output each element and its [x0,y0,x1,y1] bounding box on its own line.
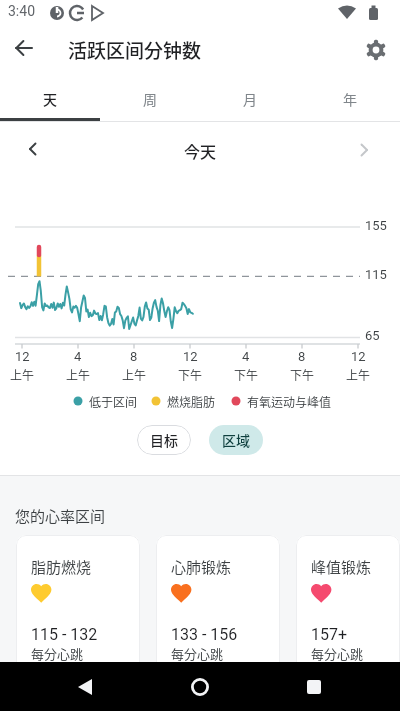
staticText: 天 [43,89,57,109]
staticText: 您的心率区间 [15,505,106,527]
button[interactable] [290,663,338,711]
staticText: 上午 [346,366,371,383]
staticText: 年 [343,89,357,109]
staticText: 峰值锻炼 [311,556,372,578]
staticText: 下午 [178,366,203,383]
staticText: 4 [242,349,250,364]
button[interactable] [6,122,60,176]
button[interactable] [0,24,48,72]
staticText: 活跃区间分钟数 [68,36,202,64]
staticText: 每分心跳 [171,644,224,663]
staticText: 115 [365,267,387,282]
staticText: 12 [351,349,366,364]
staticText: 4 [74,349,82,364]
staticText: 有氧运动与峰值 [247,393,332,410]
staticText: 115 - 132 [31,625,98,644]
button[interactable]: 峰值锻炼 [296,535,400,675]
button[interactable]: 天 [0,76,100,121]
button[interactable]: 区域 [209,425,263,455]
staticText: 燃烧脂肪 [167,393,216,410]
button[interactable] [176,663,224,711]
button[interactable]: 周 [100,76,200,121]
staticText: 下午 [234,366,259,383]
button[interactable] [337,123,391,177]
staticText: 上午 [122,366,147,383]
staticText: 65 [365,328,380,343]
staticText: 低于区间 [89,393,138,410]
staticText: 每分心跳 [31,644,84,663]
staticText: 今天 [184,139,217,162]
staticText: 155 [365,218,387,233]
staticText: 12 [183,349,198,364]
staticText: 上午 [10,366,35,383]
button[interactable] [354,28,398,72]
staticText: 133 - 156 [171,625,238,644]
button[interactable] [61,663,109,711]
staticText: 每分心跳 [311,644,364,663]
staticText: 区域 [222,430,250,450]
staticText: 3:40 [8,3,35,19]
staticText: 目标 [150,430,178,450]
staticText: 下午 [290,366,315,383]
staticText: 脂肪燃烧 [31,556,92,578]
staticText: 上午 [66,366,91,383]
staticText: 8 [130,349,138,364]
button[interactable]: 目标 [137,425,191,455]
button[interactable]: 心肺锻炼 [156,535,280,675]
button[interactable]: 脂肪燃烧 [16,535,140,675]
button[interactable]: 年 [300,76,400,121]
staticText: 157+ [311,625,348,644]
button[interactable]: 月 [200,76,300,121]
staticText: 8 [298,349,306,364]
staticText: 月 [243,89,257,109]
staticText: 周 [143,89,157,109]
staticText: 12 [15,349,30,364]
staticText: 心肺锻炼 [171,556,232,578]
